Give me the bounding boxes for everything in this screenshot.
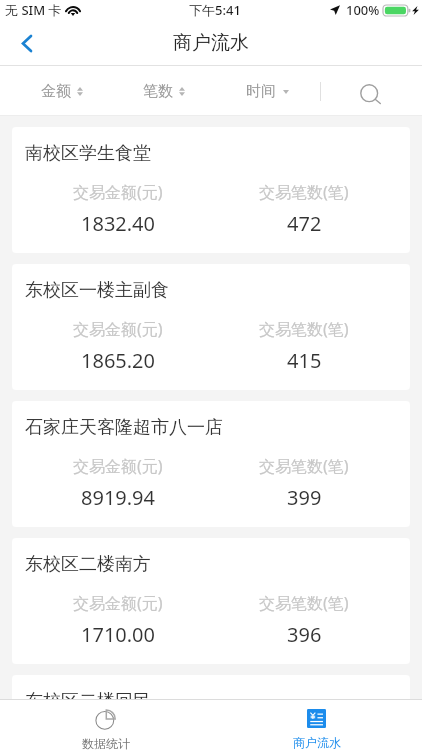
button[interactable]: Back xyxy=(7,26,43,62)
button[interactable]: Search xyxy=(348,72,393,122)
staticText: 415 xyxy=(287,347,322,374)
button[interactable]: 东校区一楼主副食 xyxy=(12,264,410,390)
button[interactable]: 数据统计 xyxy=(0,699,211,750)
staticText: 无 SIM 卡 xyxy=(5,1,62,19)
staticText: 下午5:41 xyxy=(189,1,241,19)
staticText: 商户流水 xyxy=(173,31,249,55)
button[interactable]: 商户流水 xyxy=(211,699,422,750)
button[interactable]: 南校区学生食堂 xyxy=(12,127,410,253)
staticText: 交易金额(元) xyxy=(73,318,163,340)
button[interactable]: 石家庄天客隆超市八一店 xyxy=(12,401,410,527)
staticText: 东校区一楼主副食 xyxy=(25,279,169,302)
staticText: 交易金额(元) xyxy=(73,181,163,203)
staticText: 南校区学生食堂 xyxy=(25,142,151,165)
button[interactable]: 东校区二楼南方 xyxy=(12,538,410,664)
staticText: 交易笔数(笔) xyxy=(259,455,349,477)
staticText: 100% xyxy=(346,1,380,19)
staticText: 交易笔数(笔) xyxy=(259,181,349,203)
button[interactable]: 笔数 xyxy=(130,66,198,116)
staticText: 1865.20 xyxy=(81,347,155,374)
staticText: 1832.40 xyxy=(81,210,155,237)
staticText: 交易金额(元) xyxy=(73,592,163,614)
staticText: 交易金额(元) xyxy=(73,455,163,477)
button[interactable]: 时间 xyxy=(233,66,301,116)
staticText: 笔数 xyxy=(143,82,173,101)
staticText: 472 xyxy=(287,210,322,237)
staticText: 交易笔数(笔) xyxy=(259,729,349,750)
staticText: 商户流水 xyxy=(293,735,341,750)
staticText: 东校区二楼回民 xyxy=(25,690,151,713)
staticText: 交易笔数(笔) xyxy=(259,592,349,614)
staticText: 交易金额(元) xyxy=(73,729,163,750)
staticText: 金额 xyxy=(41,82,71,101)
staticText: 时间 xyxy=(246,82,276,101)
staticText: 399 xyxy=(287,484,322,511)
staticText: 396 xyxy=(287,621,322,648)
staticText: 石家庄天客隆超市八一店 xyxy=(25,416,223,439)
staticText: 数据统计 xyxy=(82,736,130,750)
staticText: 1710.00 xyxy=(81,621,155,648)
staticText: 东校区二楼南方 xyxy=(25,553,151,576)
staticText: 交易笔数(笔) xyxy=(259,318,349,340)
button[interactable]: 金额 xyxy=(28,66,96,116)
button[interactable]: 东校区二楼回民 xyxy=(12,675,410,750)
staticText: 8919.94 xyxy=(81,484,155,511)
